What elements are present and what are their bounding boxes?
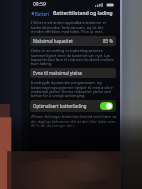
staticText: I likhet med andre oppladbare batterier … bbox=[31, 20, 117, 34]
staticText: Optimalisert batterilading bbox=[33, 103, 87, 109]
button[interactable]: Batteri bbox=[30, 9, 50, 18]
staticText: Dette er en måling av batterikapasiteten… bbox=[31, 48, 117, 66]
staticText: Innebygde dynamiske programvare- og batt… bbox=[31, 80, 117, 98]
staticText: Batteritilstand og lading bbox=[53, 10, 113, 17]
staticText: Batteri bbox=[35, 11, 49, 17]
staticText: Maksimal kapasitet bbox=[33, 38, 73, 44]
button[interactable]: Optimalisert batterilading, på bbox=[100, 102, 113, 110]
staticText: Evne til maksimal ytelse bbox=[33, 70, 83, 76]
staticText: 85 % bbox=[103, 38, 113, 44]
button[interactable]: Maksimal kapasitet bbox=[30, 36, 116, 46]
staticText: iPhone forlenger batteriets levetid ved … bbox=[31, 114, 117, 128]
button[interactable]: Optimalisert batterilading bbox=[30, 100, 116, 112]
staticText: 09:59 bbox=[33, 1, 46, 8]
button[interactable]: Evne til maksimal ytelse bbox=[30, 68, 116, 78]
